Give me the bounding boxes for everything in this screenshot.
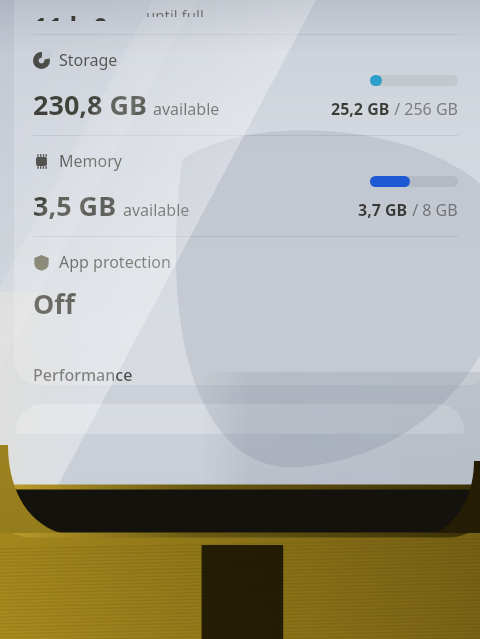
staticText: 3,5 GB bbox=[33, 187, 117, 224]
button[interactable]: Memory bbox=[0, 136, 480, 236]
button[interactable]: Back bbox=[320, 479, 480, 531]
button[interactable]: Home bbox=[160, 479, 320, 531]
staticText: / 8 GB bbox=[408, 199, 458, 221]
staticText: App protection bbox=[59, 251, 171, 273]
button[interactable]: Recent apps bbox=[0, 479, 160, 531]
staticText: 25,2 GB bbox=[331, 98, 390, 120]
staticText: available bbox=[153, 98, 220, 120]
staticText: Off bbox=[33, 285, 76, 322]
button[interactable] bbox=[16, 404, 464, 434]
staticText: 230,8 GB bbox=[33, 86, 147, 123]
staticText: 3,7 GB bbox=[358, 199, 408, 221]
staticText: / 256 GB bbox=[390, 98, 458, 120]
button[interactable]: App protection bbox=[33, 251, 171, 273]
staticText: available bbox=[123, 199, 190, 221]
staticText: until full bbox=[146, 5, 204, 17]
staticText: Memory bbox=[59, 150, 122, 172]
staticText: Performance bbox=[33, 364, 133, 386]
staticText: Storage bbox=[59, 49, 118, 71]
staticText: 11 h 0 m bbox=[33, 9, 141, 21]
button[interactable]: Storage bbox=[0, 35, 480, 135]
